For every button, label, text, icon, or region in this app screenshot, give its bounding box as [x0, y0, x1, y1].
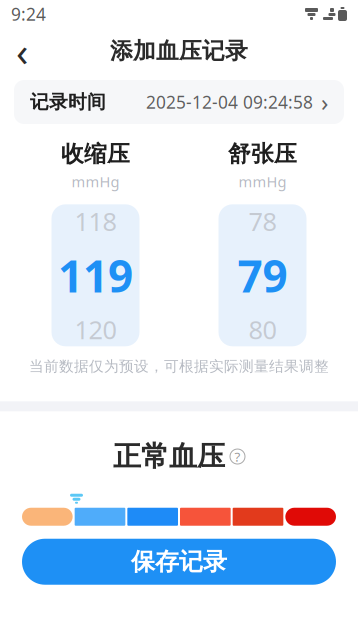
staticText: ?	[234, 448, 240, 465]
staticText: 2025-12-04 09:24:58	[146, 90, 313, 113]
staticText: ‹	[16, 24, 28, 77]
staticText: 9:24	[11, 2, 46, 25]
staticText: 添加血压记录	[110, 37, 248, 65]
staticText: 正常血压	[113, 439, 225, 474]
staticText: 记录时间	[30, 90, 106, 113]
button[interactable]: 返回	[0, 29, 44, 73]
staticText: 收缩压	[61, 140, 130, 168]
button[interactable]: 118	[51, 204, 139, 346]
staticText: 79	[237, 246, 287, 304]
staticText: 舒张压	[228, 140, 297, 168]
staticText: 78	[248, 204, 276, 238]
staticText: 119	[58, 246, 133, 304]
staticText: 80	[248, 312, 276, 346]
button[interactable]: 血压分级说明	[230, 449, 245, 464]
button[interactable]: 78	[218, 204, 306, 346]
staticText: mmHg	[238, 172, 286, 191]
staticText: ›	[321, 86, 328, 118]
staticText: 保存记录	[131, 547, 227, 576]
staticText: mmHg	[71, 172, 119, 191]
button[interactable]: 保存记录	[22, 539, 336, 585]
staticText: 118	[74, 204, 116, 238]
button[interactable]: 记录时间	[14, 80, 344, 124]
staticText: 当前数据仅为预设，可根据实际测量结果调整	[29, 357, 329, 375]
staticText: 120	[74, 312, 116, 346]
